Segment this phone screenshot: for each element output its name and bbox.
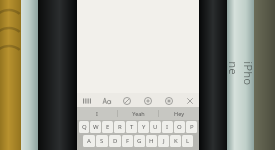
- button[interactable]: Effects: [163, 95, 174, 106]
- button[interactable]: Yeah: [118, 107, 158, 120]
- staticText: T: [130, 123, 134, 131]
- button[interactable]: Add media: [142, 95, 153, 106]
- staticText: H: [149, 137, 154, 145]
- button[interactable]: H: [146, 135, 157, 147]
- staticText: E: [106, 123, 110, 131]
- staticText: U: [153, 123, 158, 131]
- button[interactable]: Y: [138, 121, 149, 133]
- button[interactable]: Text formatting: [101, 95, 112, 106]
- staticText: Yeah: [132, 110, 145, 117]
- staticText: P: [190, 123, 194, 131]
- button[interactable]: P: [186, 121, 197, 133]
- staticText: L: [186, 137, 190, 145]
- button[interactable]: A: [83, 135, 95, 147]
- staticText: K: [174, 137, 178, 145]
- button[interactable]: J: [158, 135, 169, 147]
- button[interactable]: U: [150, 121, 161, 133]
- button[interactable]: F: [122, 135, 133, 147]
- staticText: S: [100, 137, 104, 145]
- staticText: W: [93, 123, 99, 131]
- staticText: Hey: [174, 110, 184, 117]
- button[interactable]: L: [182, 135, 193, 147]
- button[interactable]: Close: [184, 95, 195, 106]
- button[interactable]: G: [134, 135, 145, 147]
- button[interactable]: W: [90, 121, 101, 133]
- button[interactable]: I: [77, 107, 117, 120]
- button[interactable]: Keyboard layouts: [81, 95, 92, 106]
- staticText: I: [166, 123, 169, 131]
- staticText: O: [177, 123, 182, 131]
- button[interactable]: I: [162, 121, 173, 133]
- button[interactable]: T: [126, 121, 137, 133]
- button[interactable]: Hey: [159, 107, 199, 120]
- staticText: F: [126, 137, 130, 145]
- button[interactable]: Markup: [121, 95, 132, 106]
- staticText: J: [163, 137, 165, 145]
- button[interactable]: Q: [79, 121, 89, 133]
- staticText: A: [87, 137, 91, 145]
- button[interactable]: E: [102, 121, 113, 133]
- staticText: I: [96, 110, 98, 117]
- staticText: D: [113, 137, 118, 145]
- button[interactable]: O: [174, 121, 185, 133]
- staticText: iPhone: [225, 61, 255, 88]
- button[interactable]: S: [96, 135, 108, 147]
- button[interactable]: D: [109, 135, 121, 147]
- staticText: G: [137, 137, 142, 145]
- button[interactable]: K: [170, 135, 181, 147]
- staticText: Q: [82, 123, 87, 131]
- button[interactable]: R: [114, 121, 125, 133]
- staticText: Y: [142, 123, 146, 131]
- staticText: R: [118, 123, 122, 131]
